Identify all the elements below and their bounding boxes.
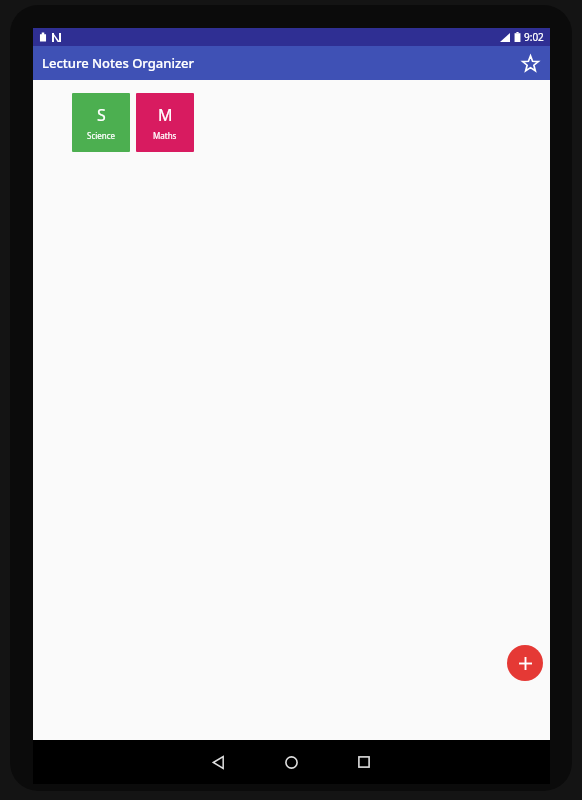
button[interactable]: S [72, 93, 130, 152]
button[interactable]: M [136, 93, 194, 152]
button[interactable]: Favorites [515, 48, 545, 78]
staticText: Science [87, 130, 116, 141]
staticText: M [158, 104, 173, 126]
staticText: S [97, 104, 106, 126]
button[interactable]: Back [196, 740, 240, 784]
staticText: Maths [153, 130, 177, 141]
button[interactable]: Recent apps [342, 740, 386, 784]
button[interactable]: Home [269, 740, 313, 784]
staticText: Lecture Notes Organizer [42, 54, 195, 72]
staticText: 9:02 [524, 30, 544, 44]
button[interactable]: Add note [507, 645, 543, 681]
